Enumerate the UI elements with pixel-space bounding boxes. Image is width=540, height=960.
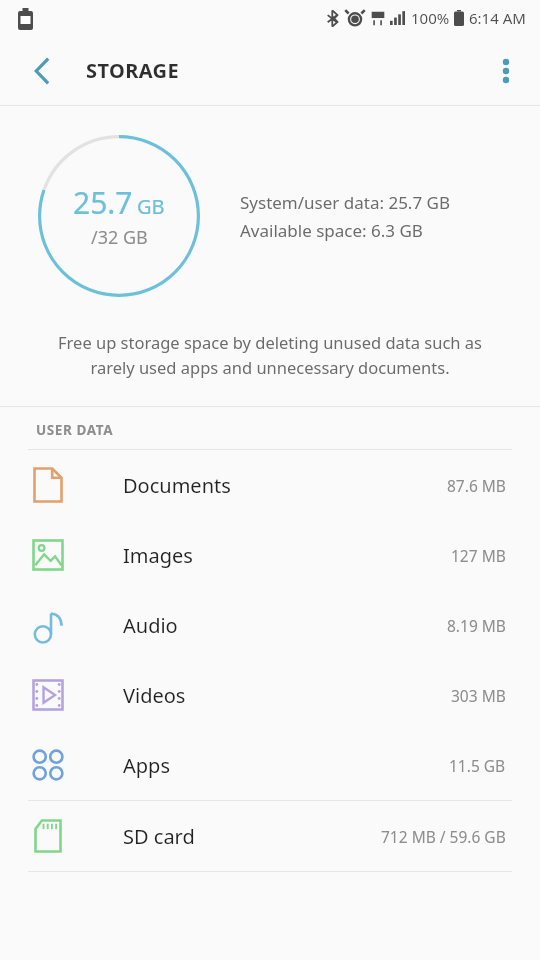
button[interactable]: Back	[18, 47, 66, 95]
staticText: 11.5 GB	[449, 755, 506, 776]
staticText: /32 GB	[91, 225, 148, 250]
button[interactable]: Audio	[0, 590, 540, 660]
staticText: SD card	[123, 823, 381, 850]
staticText: Apps	[123, 752, 449, 779]
staticText: Audio	[123, 612, 447, 639]
staticText: 87.6 MB	[447, 475, 506, 496]
staticText: 127 MB	[451, 545, 506, 566]
staticText: Documents	[123, 472, 447, 499]
staticText: 6:14 AM	[469, 8, 526, 28]
button[interactable]: Apps	[0, 730, 540, 800]
staticText: GB	[137, 193, 165, 220]
staticText: 25.7	[73, 182, 133, 223]
staticText: USER DATA	[36, 421, 114, 439]
staticText: System/user data: 25.7 GB	[240, 191, 450, 214]
staticText: 712 MB / 59.6 GB	[381, 826, 506, 847]
button[interactable]: Documents	[0, 450, 540, 520]
button[interactable]: Videos	[0, 660, 540, 730]
staticText: Free up storage space by deleting unused…	[42, 331, 498, 378]
staticText: Images	[123, 542, 451, 569]
staticText: Videos	[123, 682, 451, 709]
staticText: 8.19 MB	[447, 615, 506, 636]
staticText: 100%	[411, 8, 450, 28]
staticText: Available space: 6.3 GB	[240, 219, 423, 242]
button[interactable]: Images	[0, 520, 540, 590]
staticText: STORAGE	[86, 57, 180, 84]
button[interactable]: SD card	[0, 801, 540, 871]
button[interactable]: More options	[482, 47, 530, 95]
staticText: 303 MB	[451, 685, 506, 706]
